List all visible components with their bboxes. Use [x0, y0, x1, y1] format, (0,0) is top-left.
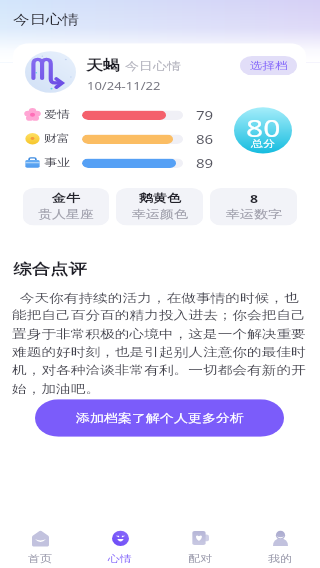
staticText: 贵人星座 [38, 208, 94, 222]
staticText: 爱情 [44, 107, 70, 120]
staticText: 幸运数字 [226, 208, 282, 222]
button[interactable]: 配对 [160, 526, 240, 568]
button[interactable]: 心情 [80, 526, 160, 568]
staticText: 添加档案了解个人更多分析 [76, 411, 244, 426]
staticText: 金牛 [52, 192, 80, 206]
other: 心情 [112, 530, 129, 546]
staticText: 10/24-11/22 [87, 79, 161, 94]
button[interactable]: 金牛 [23, 188, 109, 226]
button[interactable]: 首页 [0, 526, 80, 568]
staticText: 天蝎 [86, 58, 120, 74]
staticText: 事业 [44, 155, 70, 168]
button[interactable]: 8 [210, 188, 297, 226]
other: 我的 [272, 530, 289, 546]
staticText: 今日心情 [13, 11, 79, 28]
button[interactable]: 鹅黄色 [116, 188, 203, 226]
button[interactable]: 添加档案了解个人更多分析 [35, 399, 284, 437]
button[interactable]: 我的 [240, 526, 320, 568]
staticText: 总分 [251, 138, 275, 150]
button[interactable]: 选择档 [240, 56, 297, 75]
staticText: 综合点评 [13, 259, 87, 278]
staticText: 89 [196, 155, 214, 171]
staticText: 86 [196, 131, 214, 147]
staticText: 今日心情 [125, 59, 181, 74]
staticText: 鹅黄色 [139, 192, 181, 206]
staticText: 财富 [44, 131, 70, 144]
staticText: 首页 [28, 552, 52, 564]
staticText: 今天你有持续的活力，在做事情的时候，也能把自己百分百的精力投入进去；你会把自己置… [12, 289, 310, 396]
staticText: 79 [196, 107, 214, 123]
staticText: 配对 [188, 552, 212, 564]
staticText: 我的 [268, 552, 292, 564]
other: 配对 [192, 530, 209, 546]
staticText: 幸运颜色 [132, 208, 188, 222]
other: 首页 [32, 530, 49, 546]
staticText: 心情 [108, 552, 132, 564]
staticText: 8 [250, 191, 259, 206]
staticText: 选择档 [250, 59, 288, 72]
staticText: 80 [246, 111, 281, 144]
